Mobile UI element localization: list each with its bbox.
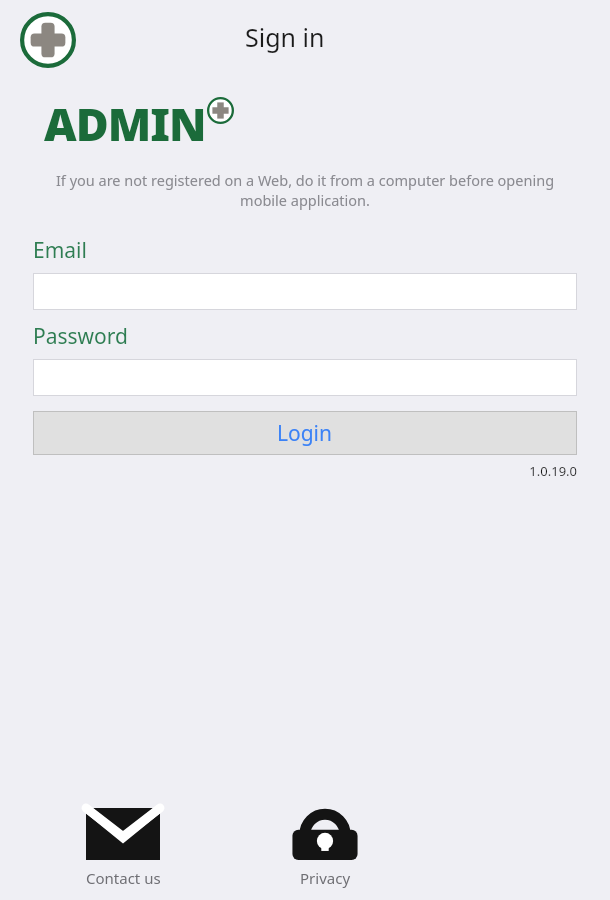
staticText: Login: [277, 419, 333, 448]
staticText: Password: [33, 322, 128, 351]
button[interactable]: Contact us: [68, 804, 178, 892]
button[interactable]: [33, 359, 577, 396]
button[interactable]: Login: [33, 411, 577, 455]
button[interactable]: App logo: [20, 12, 76, 68]
staticText: Sign in: [245, 20, 325, 54]
staticText: 1.0.19.0: [33, 462, 577, 480]
staticText: Privacy: [300, 868, 351, 888]
staticText: Email: [33, 236, 87, 265]
button[interactable]: Privacy: [270, 804, 380, 892]
button[interactable]: [33, 273, 577, 310]
staticText: If you are not registered on a Web, do i…: [40, 170, 570, 210]
staticText: ADMIN: [44, 93, 206, 154]
staticText: Contact us: [86, 868, 161, 888]
